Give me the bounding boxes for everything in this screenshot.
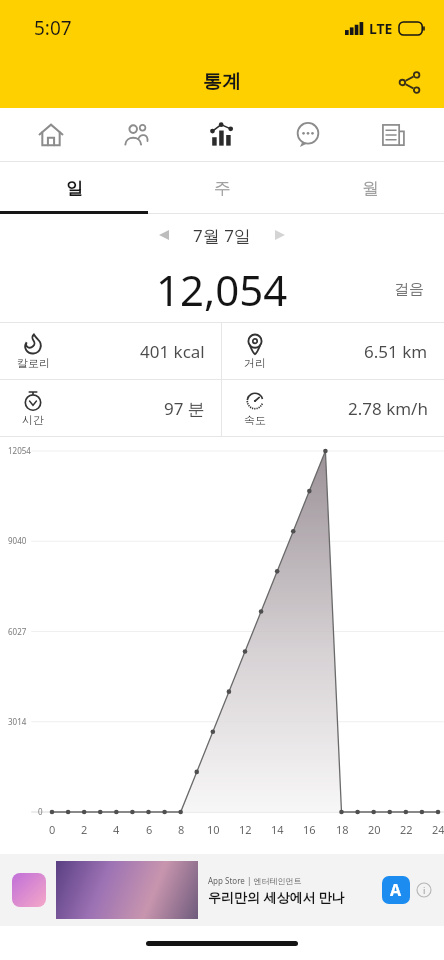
staticText: 22 [400, 822, 413, 837]
button[interactable]: Home [16, 108, 86, 162]
staticText: 6 [146, 822, 153, 837]
button[interactable]: App Store | 엔터테인먼트 [0, 854, 444, 926]
staticText: 3014 [8, 716, 27, 727]
staticText: 4 [113, 822, 120, 837]
staticText: i [423, 884, 426, 896]
staticText: 5:07 [34, 15, 72, 41]
button[interactable]: Previous day [147, 218, 181, 252]
button[interactable]: 주 [148, 162, 296, 214]
staticText: 월 [362, 178, 379, 199]
staticText: 0 [49, 822, 56, 837]
staticText: 6.51 km [364, 340, 428, 363]
staticText: 12 [239, 822, 252, 837]
staticText: 16 [303, 822, 316, 837]
staticText: 20 [368, 822, 381, 837]
button[interactable]: Statistics [187, 108, 257, 162]
button[interactable]: 칼로리 [0, 323, 221, 379]
button[interactable]: News [358, 108, 428, 162]
button[interactable]: 시간 [0, 380, 221, 436]
button[interactable]: Ad information [416, 882, 432, 898]
button[interactable]: Share [386, 59, 432, 105]
button[interactable]: 속도 [222, 380, 444, 436]
staticText: 18 [336, 822, 349, 837]
staticText: 통계 [203, 70, 241, 94]
staticText: 2.78 km/h [348, 397, 428, 420]
staticText: 97 분 [164, 397, 205, 420]
staticText: 시간 [22, 413, 44, 427]
button[interactable]: 월 [296, 162, 444, 214]
staticText: 걸음 [394, 280, 424, 299]
staticText: 12054 [8, 445, 31, 456]
staticText: A [390, 879, 402, 901]
staticText: 거리 [244, 356, 266, 370]
staticText: 속도 [244, 413, 266, 427]
button[interactable]: Next day [263, 218, 297, 252]
staticText: 일 [66, 178, 83, 199]
staticText: 주 [214, 178, 231, 199]
staticText: 401 kcal [140, 340, 205, 363]
button[interactable]: Chat [273, 108, 343, 162]
button[interactable]: 거리 [222, 323, 444, 379]
staticText: 9040 [8, 535, 27, 546]
staticText: 2 [81, 822, 88, 837]
staticText: 칼로리 [17, 356, 50, 370]
staticText: 6027 [8, 626, 27, 637]
staticText: 우리만의 세상에서 만나 [208, 888, 345, 906]
button[interactable]: Friends [101, 108, 171, 162]
staticText: 12,054 [156, 261, 288, 318]
staticText: 7월 7일 [193, 224, 251, 247]
staticText: 0 [38, 806, 43, 817]
staticText: 24 [432, 822, 444, 837]
button[interactable]: 일 [0, 162, 148, 214]
staticText: 8 [178, 822, 185, 837]
staticText: LTE [369, 19, 393, 38]
staticText: App Store | 엔터테인먼트 [208, 875, 302, 886]
staticText: 10 [207, 822, 220, 837]
staticText: 14 [271, 822, 284, 837]
